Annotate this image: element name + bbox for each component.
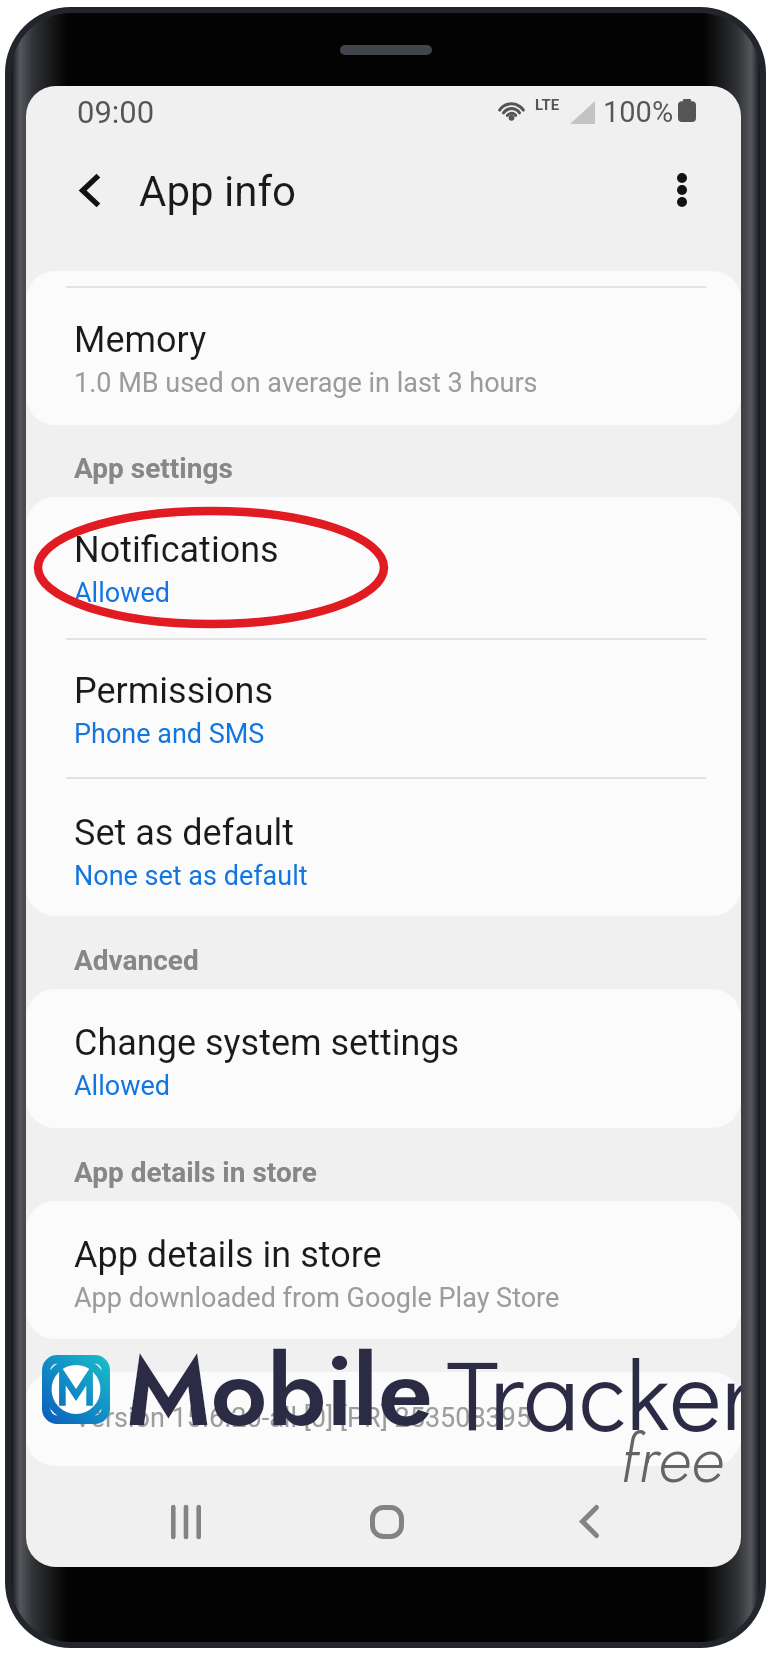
staticText: App details in store xyxy=(74,1156,317,1189)
staticText: 100% xyxy=(603,95,674,129)
button[interactable]: Home xyxy=(324,1471,450,1567)
staticText: App downloaded from Google Play Store xyxy=(74,1282,560,1314)
staticText: Notifications xyxy=(74,529,279,571)
staticText: Change system settings xyxy=(74,1022,460,1064)
staticText: App info xyxy=(139,167,296,216)
staticText: 1.0 MB used on average in last 3 hours xyxy=(74,367,538,399)
staticText: Memory xyxy=(74,319,207,361)
staticText: None set as default xyxy=(74,860,308,892)
button[interactable]: Memory xyxy=(26,286,741,425)
staticText: App settings xyxy=(74,452,233,485)
button[interactable]: Notifications xyxy=(26,497,741,635)
staticText: Allowed xyxy=(74,1070,170,1102)
button[interactable]: Back xyxy=(526,1471,652,1567)
button[interactable]: Back xyxy=(57,157,123,223)
button[interactable]: Set as default xyxy=(26,779,741,916)
staticText: App details in store xyxy=(74,1234,382,1276)
button[interactable]: App details in store xyxy=(26,1201,741,1339)
staticText: Advanced xyxy=(74,944,199,977)
button[interactable]: Recents xyxy=(123,1471,249,1567)
staticText: Permissions xyxy=(74,670,274,712)
staticText: Mobile xyxy=(126,1320,433,1462)
staticText: Set as default xyxy=(74,812,295,854)
button[interactable]: More options xyxy=(649,157,715,223)
staticText: 09:00 xyxy=(77,94,155,130)
button[interactable]: Change system settings xyxy=(26,989,741,1128)
staticText: LTE xyxy=(535,96,560,114)
staticText: Tracker xyxy=(446,1326,741,1456)
button[interactable]: Permissions xyxy=(26,637,741,776)
staticText: Version 15.6.20-all [0] [PR] 253508395 xyxy=(74,1402,532,1434)
staticText: Phone and SMS xyxy=(74,718,265,750)
staticText: free xyxy=(620,1411,724,1506)
staticText: Allowed xyxy=(74,577,170,609)
